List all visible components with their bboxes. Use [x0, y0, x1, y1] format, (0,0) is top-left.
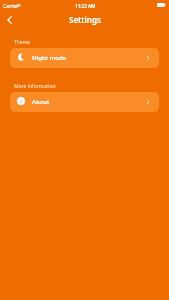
staticText: Night mode	[32, 54, 67, 62]
staticText: Theme	[14, 39, 31, 46]
button[interactable]: About	[10, 92, 159, 112]
button[interactable]: Night mode	[10, 48, 159, 68]
staticText: Settings	[69, 14, 101, 25]
staticText: Carrier	[3, 3, 19, 9]
staticText: More information	[14, 83, 56, 90]
button[interactable]: Back	[1, 11, 18, 28]
staticText: 11:22 AM	[75, 3, 96, 9]
staticText: About	[32, 98, 50, 106]
